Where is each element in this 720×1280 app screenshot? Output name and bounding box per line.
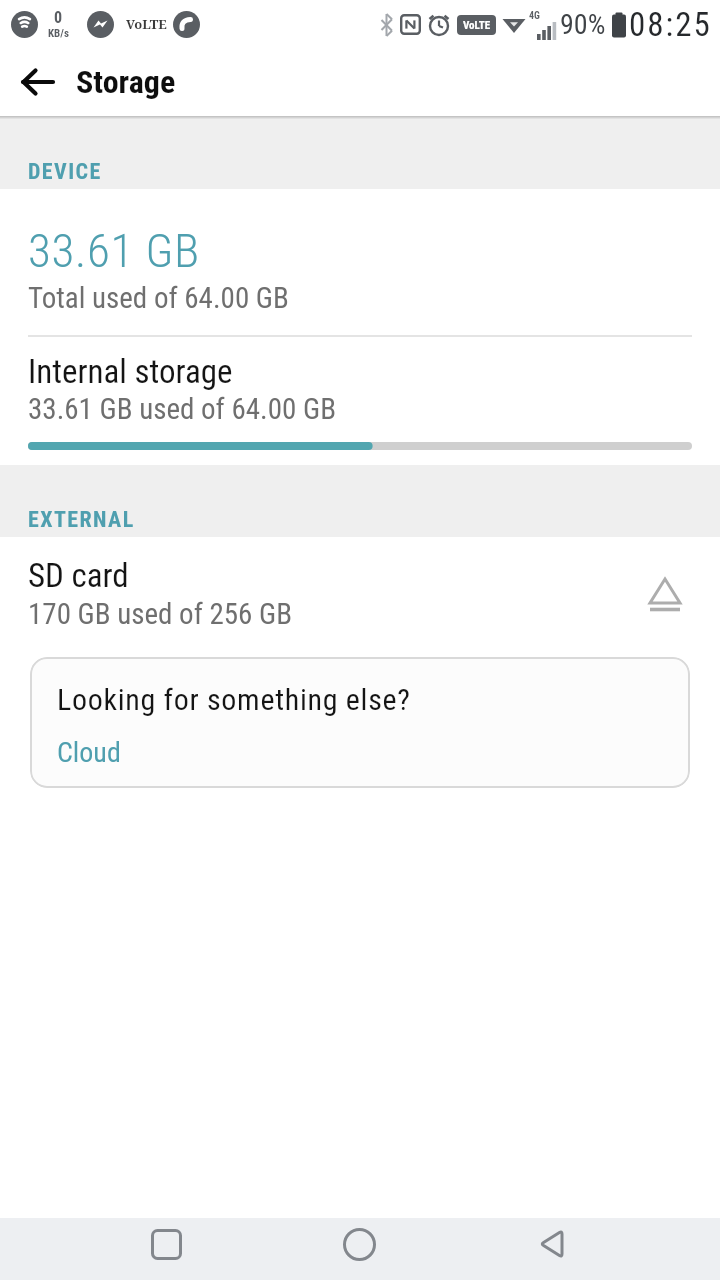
button[interactable] bbox=[0, 1218, 240, 1280]
staticText: 170 GB used of 256 GB bbox=[28, 597, 293, 631]
staticText: 0 bbox=[54, 8, 63, 27]
staticText: SD card bbox=[28, 556, 129, 595]
button[interactable]: Cloud bbox=[57, 736, 121, 769]
button[interactable] bbox=[240, 1218, 480, 1280]
staticText: VoLTE bbox=[126, 15, 167, 33]
staticText: Storage bbox=[76, 63, 176, 101]
button[interactable] bbox=[642, 577, 690, 604]
staticText: 4G bbox=[529, 10, 540, 22]
staticText: DEVICE bbox=[28, 159, 102, 185]
button[interactable] bbox=[480, 1218, 720, 1280]
button[interactable] bbox=[0, 50, 64, 114]
button[interactable]: Looking for something else? bbox=[30, 657, 690, 788]
staticText: KB/s bbox=[48, 27, 69, 40]
staticText: 90% bbox=[560, 8, 606, 41]
staticText: EXTERNAL bbox=[28, 507, 135, 533]
staticText: 33.61 GB used of 64.00 GB bbox=[28, 392, 336, 426]
staticText: VoLTE bbox=[463, 19, 491, 32]
staticText: Total used of 64.00 GB bbox=[28, 281, 289, 315]
staticText: Internal storage bbox=[28, 352, 233, 391]
staticText: 33.61 GB bbox=[28, 223, 200, 278]
staticText: 08:25 bbox=[629, 5, 712, 44]
staticText: Looking for something else? bbox=[57, 682, 411, 717]
button[interactable]: SD card bbox=[28, 556, 690, 631]
